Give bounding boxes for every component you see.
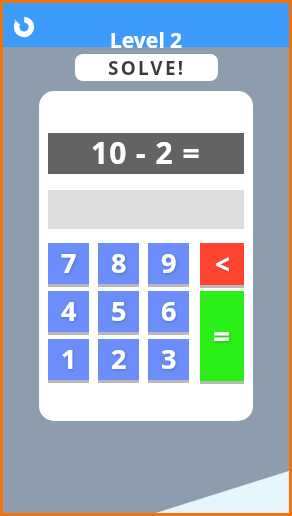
button[interactable]: 9 — [148, 243, 189, 287]
staticText: 4 — [61, 292, 77, 329]
button[interactable]: 3 — [148, 339, 189, 383]
button[interactable]: 1 — [48, 339, 89, 383]
staticText: < — [215, 246, 230, 281]
button[interactable]: 8 — [98, 243, 139, 287]
staticText: 5 — [111, 292, 127, 329]
staticText: 1 — [61, 340, 77, 377]
staticText: 3 — [161, 340, 177, 377]
staticText: SOLVE! — [108, 55, 186, 81]
button[interactable]: Restart level — [6, 9, 42, 45]
button[interactable]: 7 — [48, 243, 89, 287]
button[interactable]: < — [200, 243, 244, 288]
button[interactable]: 5 — [98, 291, 139, 335]
staticText: Level 2 — [110, 26, 183, 55]
staticText: 10 - 2 = — [91, 132, 201, 173]
staticText: = — [213, 315, 231, 356]
staticText: 7 — [61, 244, 77, 281]
staticText: 6 — [161, 292, 177, 329]
button[interactable]: 4 — [48, 291, 89, 335]
staticText: 8 — [111, 244, 127, 281]
staticText: 9 — [161, 244, 177, 281]
button[interactable]: = — [200, 291, 244, 384]
button[interactable]: 6 — [148, 291, 189, 335]
button[interactable]: SOLVE! — [75, 54, 218, 81]
staticText: 2 — [111, 340, 127, 377]
button[interactable]: 2 — [98, 339, 139, 383]
